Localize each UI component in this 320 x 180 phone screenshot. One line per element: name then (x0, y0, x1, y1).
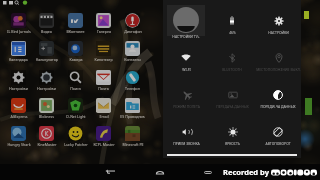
staticText: ПОРЕДИ-ЧА ДАННЫХ (260, 104, 296, 109)
staticText: Настройки (9, 86, 28, 91)
staticText: Контакты (124, 57, 141, 62)
button[interactable]: D-Net Light (61, 98, 90, 122)
button[interactable]: ВКонтакте (61, 13, 90, 37)
staticText: BLUETOOTH (222, 67, 242, 72)
button[interactable]: НАСТРОЙКИ (255, 3, 301, 40)
staticText: Email (99, 114, 109, 119)
button[interactable]: Blokness Notizen (32, 98, 61, 122)
button[interactable]: Поиск (61, 70, 90, 94)
button[interactable]: РЕЖИМ ПОЛЕТА (163, 77, 209, 114)
button[interactable]: Камера (61, 41, 90, 65)
button[interactable]: Диктофон (118, 13, 147, 37)
staticText: WI-FI (182, 67, 191, 72)
button[interactable]: Minecraft PE (118, 126, 147, 150)
staticText: Настройки Google (32, 86, 61, 91)
button[interactable]: АВТОПОВОРОТ (255, 114, 301, 151)
button[interactable]: НАСТРОЙКИ TV+ (163, 3, 209, 40)
staticText: Телефон (125, 86, 140, 91)
staticText: Поиск (70, 86, 81, 91)
staticText: ЯРКОСТЬ (225, 141, 240, 146)
button[interactable]: KineMaster (32, 126, 61, 150)
staticText: АВТОПОВОРОТ (265, 141, 291, 146)
button[interactable]: Телефон (118, 70, 147, 94)
staticText: Lucky Patcher (64, 142, 88, 147)
staticText: НАСТРОЙКИ (268, 30, 289, 35)
staticText: РЕЖИМ ПОЛЕТА (173, 104, 200, 109)
button[interactable]: Lucky Patcher (61, 126, 90, 150)
button[interactable]: ПОРЕДИ-ЧА ДАННЫХ (255, 77, 301, 114)
button[interactable]: МЕСТОПОЛОЖЕНИЕ ВЫКЛ. (255, 40, 301, 77)
button[interactable]: Почта (89, 70, 118, 94)
staticText: Календарь (9, 57, 28, 62)
staticText: ВКонтакте (66, 29, 85, 34)
button[interactable]: IL Bird Jurnals (4, 13, 33, 37)
button[interactable]: Кинотеатр (89, 41, 118, 65)
staticText: D-Net Light (66, 114, 86, 119)
button[interactable]: AliExpress (4, 98, 33, 122)
staticText: KCPL Master (93, 142, 115, 147)
button[interactable]: BLUETOOTH (209, 40, 255, 77)
staticText: IL Bird Jurnals (7, 29, 31, 34)
staticText: ES Проводник (120, 114, 145, 119)
button[interactable]: Настройки (4, 70, 33, 94)
staticText: Minecraft PE (122, 142, 144, 147)
staticText: Камера (69, 57, 83, 62)
button[interactable]: Видео (32, 13, 61, 37)
button[interactable]: ЯРКОСТЬ (209, 114, 255, 151)
button[interactable]: Калькулятор (32, 41, 61, 65)
button[interactable]: WI-FI (163, 40, 209, 77)
button[interactable]: Контакты (118, 41, 147, 65)
staticText: Почта (98, 86, 109, 91)
button[interactable]: Календарь (4, 41, 33, 65)
staticText: Blokness Notizen (32, 114, 61, 119)
staticText: Калькулятор (36, 57, 58, 62)
button[interactable]: Home (150, 164, 170, 180)
staticText: Галерея (97, 29, 111, 34)
button[interactable]: ES Проводник (118, 98, 147, 122)
button[interactable]: ПРИЕМ ЗВОНКА (163, 114, 209, 151)
staticText: НАСТРОЙКИ TV+ (172, 34, 200, 39)
button[interactable]: ПЕРЕДАЧА ДАННЫХ (209, 77, 255, 114)
button[interactable]: Галерея (89, 13, 118, 37)
staticText: МЕСТОПОЛОЖЕНИЕ ВЫКЛ. (256, 67, 301, 72)
staticText: Recorded by (223, 167, 269, 177)
staticText: Видео (41, 29, 52, 34)
button[interactable]: Hungry Shark (4, 126, 33, 150)
staticText: KineMaster (37, 142, 57, 147)
button[interactable]: Recents (198, 164, 218, 180)
button[interactable]: Back (100, 164, 120, 180)
staticText: Диктофон (124, 29, 142, 34)
button[interactable]: 46% (209, 3, 255, 40)
button[interactable]: KCPL Master (89, 126, 118, 150)
staticText: 46% (229, 30, 236, 35)
staticText: ПРИЕМ ЗВОНКА (173, 141, 200, 146)
staticText: AliExpress (10, 114, 28, 119)
staticText: Кинотеатр (94, 57, 113, 62)
button[interactable]: Email (89, 98, 118, 122)
staticText: ПЕРЕДАЧА ДАННЫХ (216, 104, 249, 109)
staticText: Hungry Shark (7, 142, 31, 147)
button[interactable]: Настройки Google (32, 70, 61, 94)
